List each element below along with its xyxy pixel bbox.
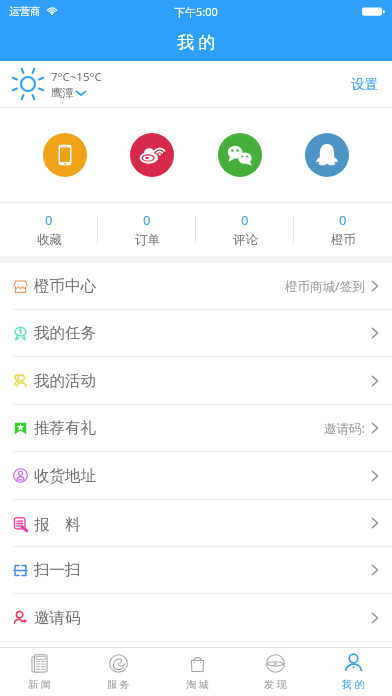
staticText: 邀请码: [34, 608, 81, 628]
staticText: 订单: [135, 232, 160, 248]
button[interactable]: 0: [196, 203, 294, 256]
staticText: 收货地址: [34, 466, 96, 486]
staticText: 邀请码:: [324, 420, 365, 437]
staticText: 推荐有礼: [34, 418, 96, 438]
button[interactable]: 我 的: [314, 648, 392, 696]
staticText: 0: [45, 211, 53, 229]
button[interactable]: 收货地址: [0, 452, 392, 499]
staticText: 评论: [233, 232, 258, 248]
staticText: 发 现: [264, 677, 287, 691]
button[interactable]: 推荐有礼: [0, 405, 392, 451]
button[interactable]: 扫一扫: [0, 547, 392, 593]
button[interactable]: 新 闻: [0, 648, 79, 696]
staticText: 下午5:00: [174, 4, 218, 19]
staticText: 我的活动: [34, 371, 96, 391]
staticText: 设置: [351, 76, 378, 93]
button[interactable]: Phone app: [43, 133, 87, 177]
staticText: 扫一扫: [34, 560, 81, 580]
button[interactable]: WeChat: [218, 133, 262, 177]
button[interactable]: 邀请码: [0, 594, 392, 641]
staticText: 报 料: [34, 513, 82, 534]
button[interactable]: 7°C~15°C: [0, 61, 392, 107]
button[interactable]: 我的活动: [0, 357, 392, 404]
button[interactable]: 报 料: [0, 500, 392, 546]
staticText: 橙币商城/签到: [285, 278, 365, 295]
staticText: 鹰潭: [51, 86, 74, 100]
staticText: 我的任务: [34, 323, 96, 343]
button[interactable]: 橙币中心: [0, 263, 392, 309]
staticText: 橙币中心: [34, 276, 96, 296]
button[interactable]: 服 务: [79, 648, 158, 696]
staticText: 0: [339, 211, 347, 229]
button[interactable]: QQ: [305, 133, 349, 177]
button[interactable]: Weibo: [130, 133, 174, 177]
staticText: 淘 城: [186, 677, 209, 691]
staticText: 橙币: [331, 232, 356, 248]
staticText: 我 的: [177, 30, 216, 53]
button[interactable]: 设置: [337, 68, 392, 101]
button[interactable]: 发 现: [236, 648, 314, 696]
button[interactable]: 0: [294, 203, 392, 256]
staticText: 运营商: [9, 5, 41, 18]
button[interactable]: 0: [0, 203, 98, 256]
staticText: 收藏: [37, 232, 62, 248]
staticText: 服 务: [107, 677, 130, 691]
staticText: 新 闻: [28, 677, 51, 691]
staticText: 0: [241, 211, 249, 229]
staticText: 0: [143, 211, 151, 229]
button[interactable]: 我的任务: [0, 310, 392, 356]
button[interactable]: 淘 城: [158, 648, 236, 696]
staticText: 7°C~15°C: [51, 69, 102, 85]
staticText: 我 的: [342, 677, 365, 691]
button[interactable]: 0: [98, 203, 196, 256]
